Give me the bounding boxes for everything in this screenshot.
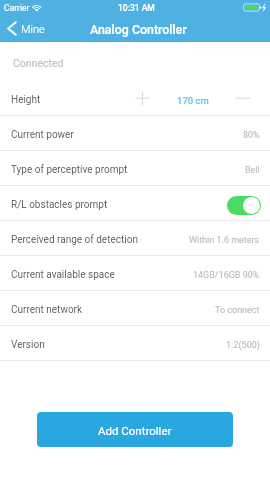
- staticText: 10:31 AM: [118, 3, 155, 13]
- button[interactable]: Increase height: [131, 87, 154, 110]
- button[interactable]: Current network: [0, 291, 270, 325]
- staticText: 80%: [243, 130, 260, 141]
- staticText: Bell: [245, 165, 260, 176]
- staticText: Within 1.6 meters: [189, 235, 260, 246]
- button[interactable]: Current power: [0, 116, 270, 150]
- button[interactable]: Type of perceptive prompt: [0, 151, 270, 185]
- button[interactable]: Version: [0, 326, 270, 360]
- staticText: Analog Controller: [90, 22, 187, 37]
- staticText: R/L obstacles prompt: [11, 199, 108, 211]
- button[interactable]: Mine: [0, 15, 52, 42]
- staticText: Mine: [21, 23, 45, 36]
- staticText: Version: [11, 339, 45, 351]
- staticText: Height: [11, 94, 41, 106]
- staticText: 170 cm: [177, 95, 209, 106]
- staticText: 14GB/16GB 90%: [193, 270, 260, 281]
- staticText: Current available space: [11, 269, 115, 281]
- button[interactable]: Toggle R/L obstacles prompt: [227, 196, 261, 215]
- button[interactable]: Perceived range of detection: [0, 221, 270, 255]
- button[interactable]: Current available space: [0, 256, 270, 290]
- staticText: Connected: [13, 57, 64, 69]
- staticText: Add Controller: [98, 424, 172, 437]
- button[interactable]: Add Controller: [37, 412, 233, 447]
- staticText: 1.2(500): [226, 340, 260, 351]
- staticText: Type of perceptive prompt: [11, 164, 128, 176]
- staticText: To connect: [215, 305, 260, 316]
- staticText: Current network: [11, 304, 83, 316]
- staticText: Current power: [11, 129, 74, 141]
- button[interactable]: Decrease height: [231, 87, 254, 110]
- staticText: Perceived range of detection: [11, 234, 138, 246]
- staticText: Carrier: [4, 3, 30, 13]
